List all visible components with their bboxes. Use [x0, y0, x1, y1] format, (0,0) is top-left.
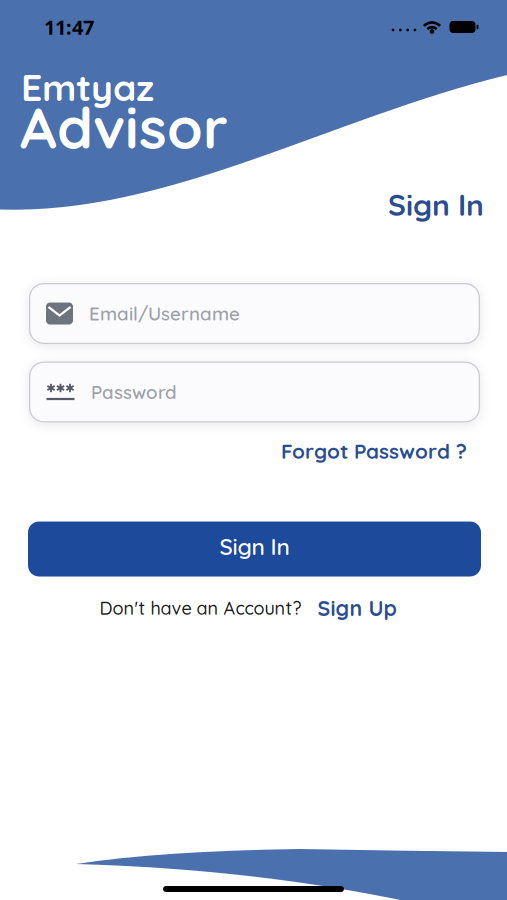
staticText: Don't have an Account? — [99, 597, 301, 619]
staticText: Email/Username — [89, 302, 240, 325]
staticText: Password — [91, 380, 177, 404]
button[interactable]: Sign In — [28, 521, 481, 576]
button[interactable]: Forgot Password ? — [281, 438, 467, 464]
staticText: Forgot Password ? — [281, 438, 467, 464]
staticText: Advisor — [20, 91, 228, 163]
staticText: Sign In — [219, 532, 289, 561]
staticText: Sign In — [388, 186, 484, 223]
staticText: 11:47 — [44, 14, 94, 40]
button[interactable]: Password — [29, 361, 480, 422]
staticText: Emtyaz — [21, 64, 154, 110]
button[interactable]: Sign Up — [317, 595, 396, 621]
staticText: Sign Up — [317, 595, 396, 621]
button[interactable]: Email/Username — [29, 283, 480, 344]
